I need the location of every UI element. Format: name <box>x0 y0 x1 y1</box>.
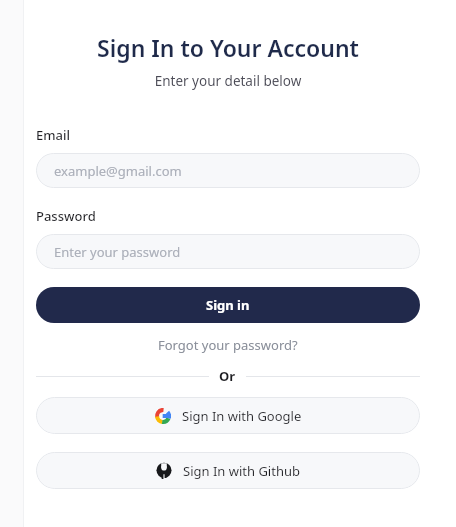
button[interactable]: Google <box>36 397 420 434</box>
staticText: Sign In with Github <box>183 462 300 480</box>
staticText: Email <box>36 126 71 144</box>
staticText: Or <box>219 367 236 385</box>
staticText: Forgot your password? <box>158 336 298 354</box>
other: Github <box>156 463 172 479</box>
staticText: Enter your detail below <box>36 72 420 90</box>
staticText: Sign In to Your Account <box>36 32 420 63</box>
button[interactable]: Sign in <box>36 287 420 323</box>
button[interactable]: example@gmail.com <box>36 153 420 188</box>
button[interactable]: Github <box>36 452 420 489</box>
staticText: Sign In with Google <box>182 407 302 425</box>
staticText: Enter your password <box>54 243 181 261</box>
button[interactable]: Enter your password <box>36 234 420 269</box>
button[interactable]: Forgot your password? <box>36 333 420 357</box>
other: Google <box>155 408 171 424</box>
staticText: example@gmail.com <box>54 162 182 180</box>
staticText: Sign in <box>206 296 250 314</box>
staticText: Password <box>36 207 96 225</box>
